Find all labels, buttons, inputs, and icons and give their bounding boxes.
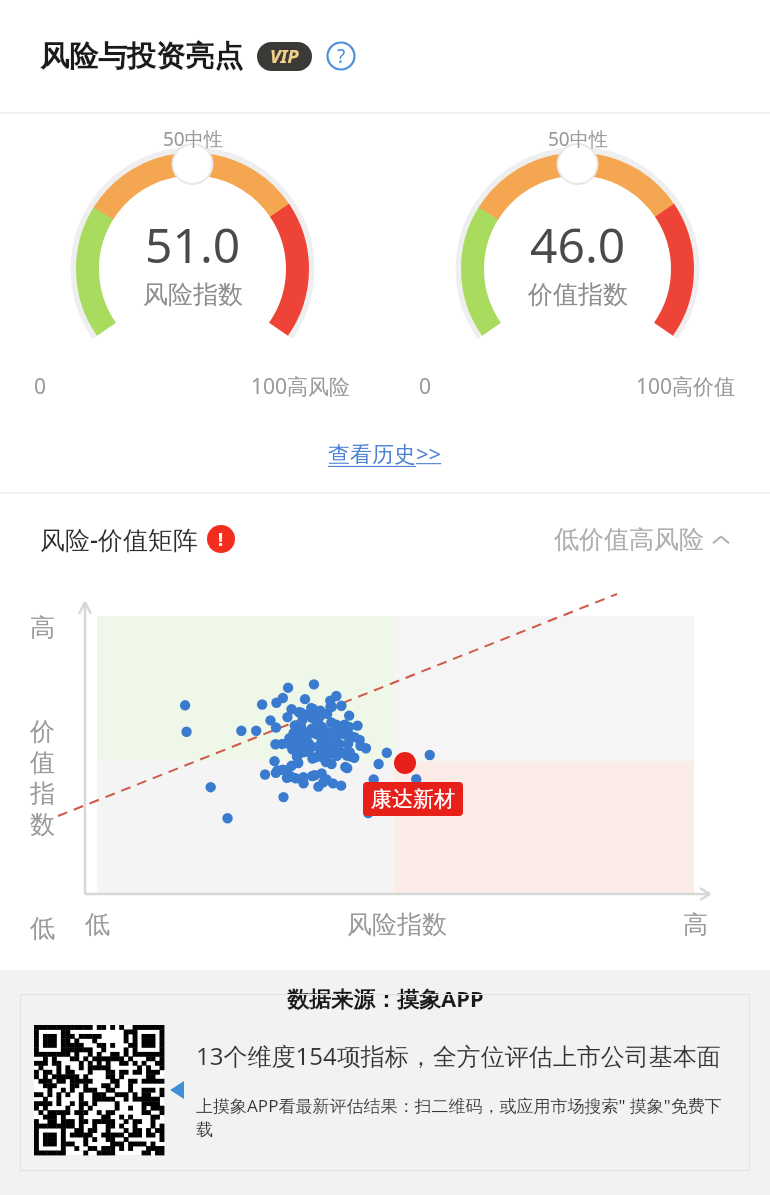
staticText: 50中性 xyxy=(163,126,223,152)
staticText: 51.0 xyxy=(145,212,241,277)
staticText: 数 xyxy=(30,809,55,840)
staticText: 低 xyxy=(85,909,110,940)
staticText: 风险指数 xyxy=(143,279,243,310)
staticText: 上摸象APP看最新评估结果：扫二维码，或应用市场搜索" 摸象"免费下载 xyxy=(196,1094,736,1140)
staticText: ? xyxy=(337,43,346,69)
staticText: 46.0 xyxy=(530,212,626,277)
staticText: VIP xyxy=(270,44,299,69)
staticText: 0 xyxy=(34,372,47,401)
staticText: 100高价值 xyxy=(636,372,736,401)
staticText: 指 xyxy=(30,778,55,809)
staticText: 高 xyxy=(30,612,55,643)
staticText: 13个维度154项指标，全方位评估上市公司基本面 xyxy=(196,1039,721,1072)
staticText: 风险指数 xyxy=(347,909,447,940)
button[interactable]: Warning xyxy=(207,525,235,553)
button[interactable]: 查看历史>> xyxy=(318,428,452,478)
button[interactable]: 低价值高风险 xyxy=(554,524,730,555)
staticText: 价 xyxy=(30,716,55,747)
staticText: 康达新材 xyxy=(371,786,455,812)
staticText: ! xyxy=(218,527,224,552)
button[interactable]: Help xyxy=(326,41,356,71)
staticText: 价值指数 xyxy=(528,279,628,310)
staticText: 查看历史>> xyxy=(328,438,442,468)
staticText: 低价值高风险 xyxy=(554,524,704,555)
button[interactable]: 康达新材 xyxy=(363,782,463,816)
staticText: 50中性 xyxy=(548,126,608,152)
staticText: 100高风险 xyxy=(251,372,351,401)
button[interactable]: VIP xyxy=(257,42,312,71)
staticText: 风险-价值矩阵 xyxy=(40,522,199,556)
staticText: 数据来源：摸象APP xyxy=(287,983,484,1013)
staticText: 低 xyxy=(30,913,55,944)
staticText: 值 xyxy=(30,747,55,778)
staticText: 风险与投资亮点 xyxy=(40,38,243,75)
staticText: 高 xyxy=(683,909,708,940)
staticText: 0 xyxy=(419,372,432,401)
